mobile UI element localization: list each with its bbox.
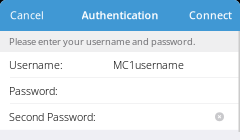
staticText: Password: [9,84,58,98]
staticText: Username: [9,58,63,72]
button[interactable]: Username: [0,52,240,77]
staticText: Authentication [81,8,158,22]
button[interactable]: Cancel [0,0,54,31]
button[interactable]: Second Password: [0,104,240,129]
staticText: Second Password: [9,110,96,124]
button[interactable]: Password: [0,78,240,103]
staticText: Cancel [10,8,44,22]
staticText: MC1username [113,58,184,72]
button[interactable]: Clear text [215,112,224,121]
button[interactable]: Connect [181,0,240,31]
staticText: Please enter your username and password. [9,35,196,48]
staticText: Connect [189,8,232,22]
